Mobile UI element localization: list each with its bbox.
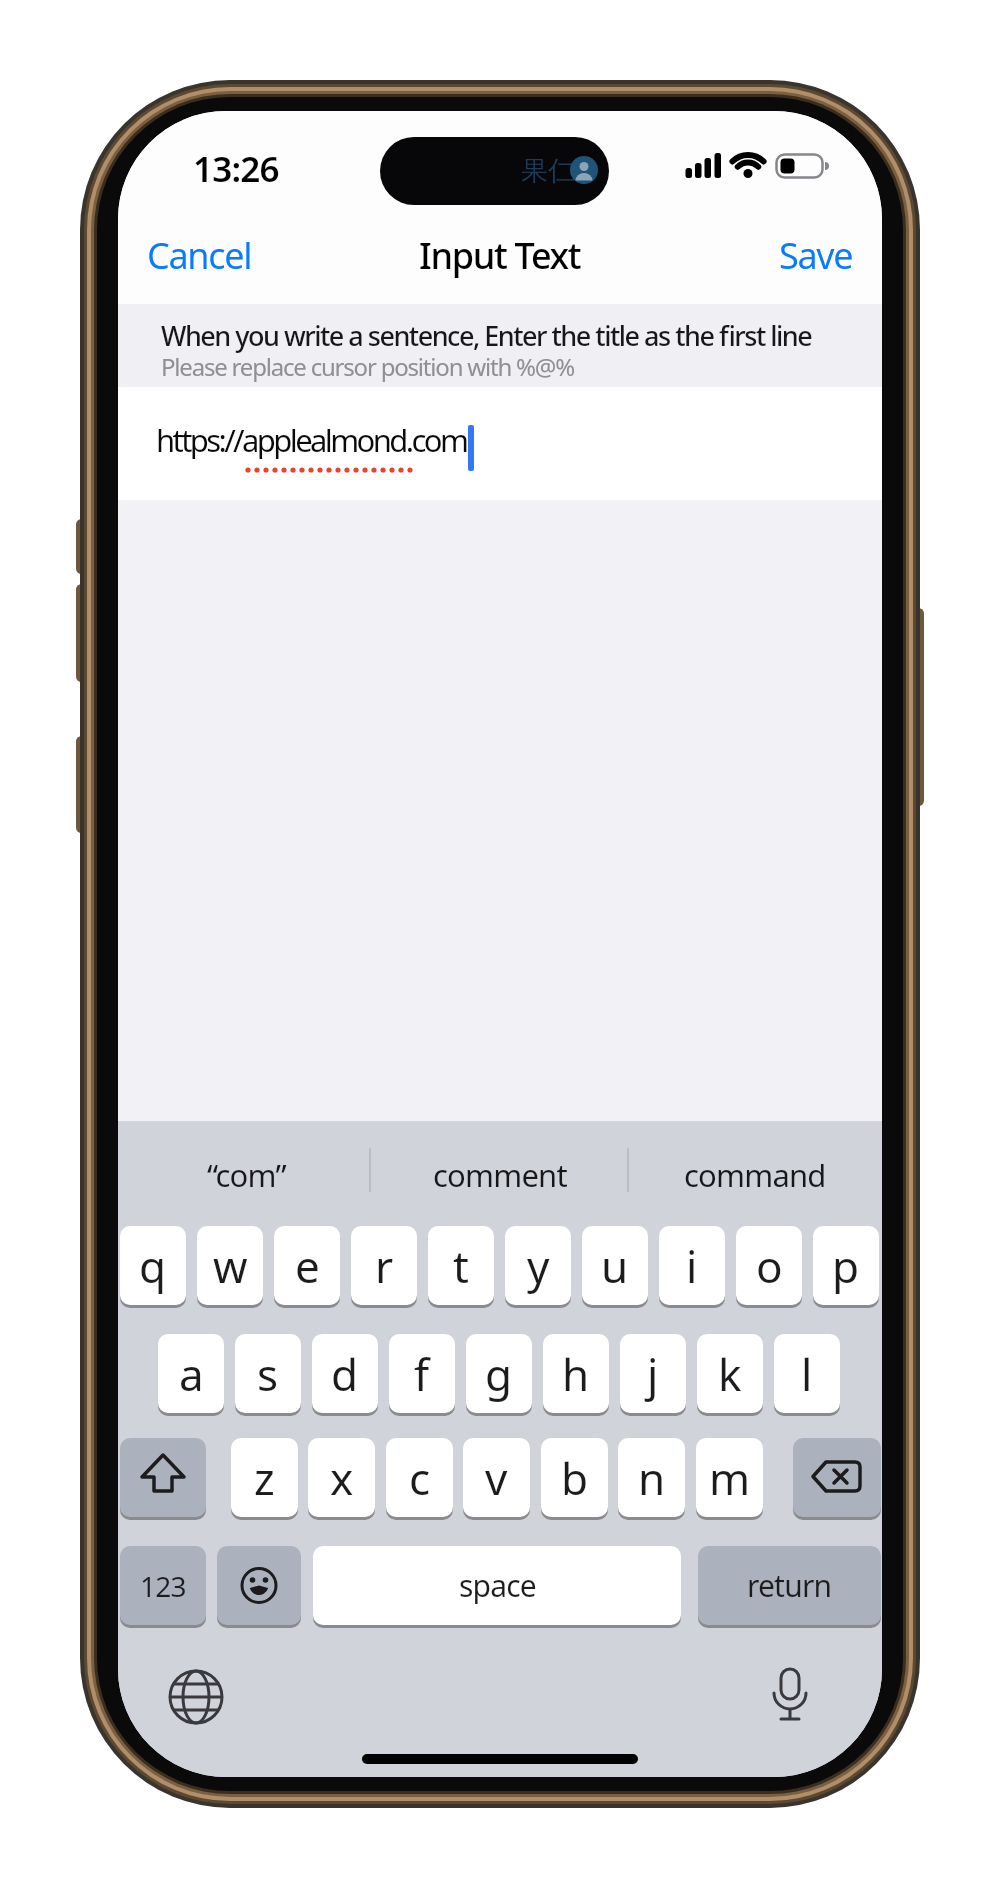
staticText: n — [638, 1448, 666, 1508]
staticText: 果仁 — [521, 154, 575, 188]
button[interactable]: z — [231, 1438, 298, 1517]
staticText: c — [409, 1448, 431, 1508]
staticText: command — [684, 1154, 826, 1196]
button[interactable]: q — [120, 1226, 186, 1305]
button[interactable]: t — [428, 1226, 494, 1305]
button[interactable]: e — [274, 1226, 340, 1305]
button[interactable]: o — [736, 1226, 802, 1305]
button[interactable]: g — [466, 1334, 532, 1413]
button[interactable] — [793, 1438, 881, 1517]
button[interactable]: l — [774, 1334, 840, 1413]
button[interactable]: “com” — [136, 1154, 356, 1196]
button[interactable]: Cancel — [147, 231, 367, 279]
staticText: Cancel — [147, 231, 252, 279]
staticText: m — [709, 1448, 751, 1508]
staticText: i — [686, 1236, 698, 1296]
button[interactable]: c — [386, 1438, 453, 1517]
staticText: t — [453, 1236, 469, 1296]
button[interactable]: y — [505, 1226, 571, 1305]
button[interactable]: i — [659, 1226, 725, 1305]
staticText: g — [485, 1344, 513, 1404]
button[interactable] — [120, 1438, 206, 1517]
staticText: https://applealmond.com — [156, 419, 467, 461]
staticText: v — [485, 1448, 508, 1508]
button[interactable]: f — [389, 1334, 455, 1413]
staticText: “com” — [207, 1154, 286, 1196]
staticText: comment — [433, 1154, 567, 1196]
staticText: return — [747, 1565, 832, 1606]
button[interactable]: 123 — [120, 1546, 206, 1625]
button[interactable]: p — [813, 1226, 879, 1305]
button[interactable]: b — [541, 1438, 608, 1517]
button[interactable] — [760, 1667, 820, 1727]
button[interactable]: h — [543, 1334, 609, 1413]
staticText: a — [179, 1344, 204, 1404]
staticText: l — [801, 1344, 813, 1404]
button[interactable]: u — [582, 1226, 648, 1305]
staticText: b — [561, 1448, 589, 1508]
staticText: k — [718, 1344, 742, 1404]
staticText: When you write a sentence, Enter the tit… — [161, 317, 812, 354]
button[interactable]: a — [158, 1334, 224, 1413]
button[interactable]: space — [313, 1546, 681, 1625]
staticText: o — [756, 1236, 783, 1296]
button[interactable]: j — [620, 1334, 686, 1413]
staticText: 123 — [140, 1567, 186, 1605]
staticText: s — [257, 1344, 279, 1404]
button[interactable]: r — [351, 1226, 417, 1305]
staticText: r — [375, 1236, 394, 1296]
staticText: j — [647, 1344, 659, 1404]
staticText: h — [562, 1344, 590, 1404]
button[interactable] — [166, 1667, 226, 1727]
staticText: space — [459, 1565, 536, 1606]
staticText: e — [295, 1236, 320, 1296]
staticText: d — [331, 1344, 359, 1404]
button[interactable]: n — [618, 1438, 685, 1517]
button[interactable]: Save — [633, 231, 853, 279]
button[interactable]: return — [698, 1546, 881, 1625]
staticText: y — [527, 1236, 550, 1296]
button[interactable]: w — [197, 1226, 263, 1305]
staticText: x — [330, 1448, 354, 1508]
button[interactable]: s — [235, 1334, 301, 1413]
button[interactable] — [217, 1546, 301, 1625]
staticText: f — [414, 1344, 430, 1404]
staticText: 13:26 — [193, 145, 279, 189]
button[interactable]: k — [697, 1334, 763, 1413]
button[interactable]: v — [463, 1438, 530, 1517]
staticText: Input Text — [419, 231, 581, 279]
button[interactable]: x — [308, 1438, 375, 1517]
staticText: w — [213, 1236, 248, 1296]
staticText: q — [139, 1236, 167, 1296]
button[interactable]: d — [312, 1334, 378, 1413]
staticText: u — [601, 1236, 629, 1296]
staticText: p — [832, 1236, 860, 1296]
staticText: Save — [779, 231, 853, 279]
button[interactable]: command — [645, 1154, 865, 1196]
staticText: Please replace cursor position with %@% — [161, 350, 574, 383]
button[interactable]: comment — [390, 1154, 610, 1196]
button[interactable]: m — [696, 1438, 763, 1517]
staticText: z — [254, 1448, 275, 1508]
